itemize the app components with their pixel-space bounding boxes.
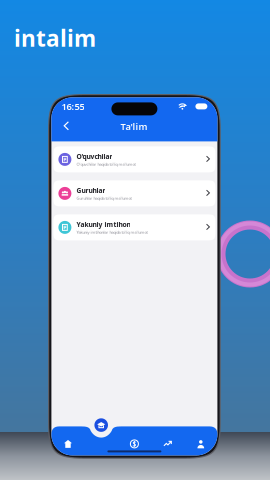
staticText: Yakuniy imtihon	[76, 220, 130, 229]
button[interactable]: Payments	[118, 433, 151, 455]
staticText: S	[132, 439, 136, 448]
staticText: Guruhlar haqida to'liq ma'lumot	[76, 195, 131, 201]
staticText: Ta'lim	[120, 120, 147, 133]
staticText: O'quvchilar haqida to'liq ma'lumot	[76, 161, 135, 167]
staticText: intalim	[14, 23, 96, 53]
staticText: Guruhlar	[76, 186, 105, 195]
button[interactable]: Yakuniy imtihon	[53, 214, 215, 240]
button[interactable]: O'quvchilar	[53, 146, 215, 172]
button[interactable]: Statistics	[151, 433, 184, 455]
button[interactable]: intalim	[14, 23, 96, 53]
staticText: O'quvchilar	[76, 152, 112, 161]
button[interactable]: Profile	[184, 433, 217, 455]
button[interactable]: Back	[60, 120, 73, 133]
staticText: 16:55	[61, 100, 84, 113]
button[interactable]: Home	[51, 433, 85, 455]
button[interactable]: Guruhlar	[53, 180, 215, 206]
staticText: Yakuniy imtihonlar haqida to'liq ma'lumo…	[76, 229, 147, 235]
button[interactable]: Courses	[94, 418, 108, 432]
